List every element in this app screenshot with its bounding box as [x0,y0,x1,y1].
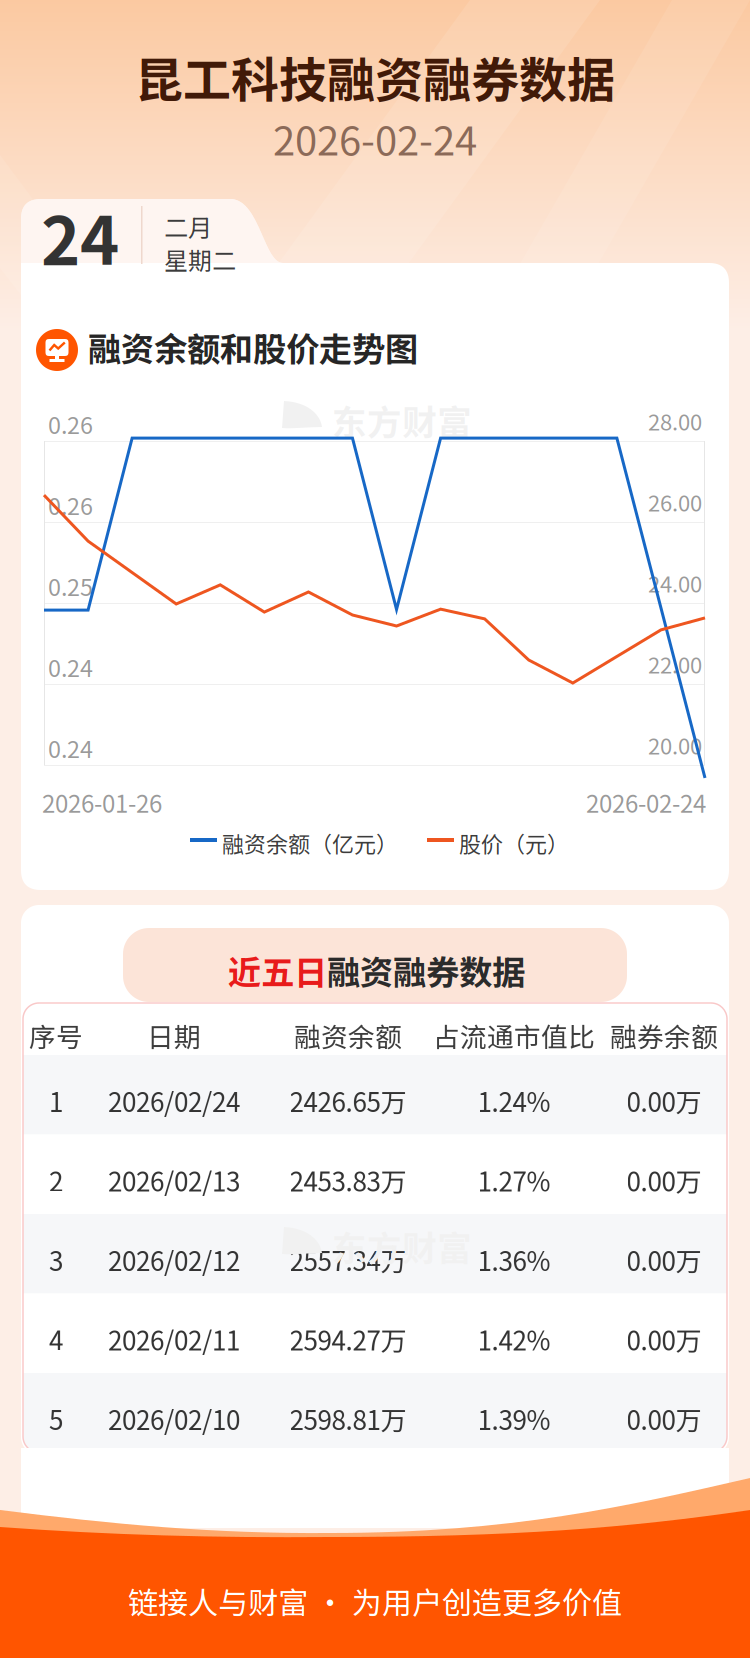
staticText: 2026/02/24 [108,1082,240,1119]
staticText: 2026-02-24 [586,785,706,820]
staticText: 东方财富 [332,395,472,445]
staticText: 2026/02/11 [108,1320,240,1358]
staticText: 0.00万 [626,1161,701,1199]
staticText: 2557.34万 [289,1241,406,1278]
staticText: 24 [41,188,119,284]
staticText: 2026-01-26 [42,785,162,820]
staticText: 融券余额 [610,1016,718,1055]
staticText: 1 [49,1082,63,1119]
staticText: 1.39% [477,1400,550,1437]
staticText: 序号 [29,1016,83,1055]
staticText: 2026/02/12 [108,1241,240,1278]
staticText: 0.26 [48,407,93,441]
staticText: 0.26 [48,488,93,522]
staticText: 2453.83万 [289,1161,406,1199]
staticText: 融资余额 [294,1016,402,1055]
staticText: 3 [49,1241,63,1278]
staticText: 融资余额（亿元） [222,827,398,859]
staticText: 东方财富 [332,1221,472,1271]
staticText: 2426.65万 [289,1082,406,1119]
staticText: 二月 [164,209,212,244]
staticText: 0.00万 [626,1082,701,1119]
staticText: 近五日 [228,946,327,994]
staticText: 0.00万 [626,1320,701,1358]
staticText: 2026/02/13 [108,1161,240,1199]
staticText: 占流通市值比 [433,1016,595,1055]
staticText: 1.24% [477,1082,550,1119]
staticText: 24.00 [648,567,702,599]
staticText: 1.27% [477,1161,550,1199]
staticText: 0.24 [48,650,93,684]
staticText: 融资余额和股价走势图 [88,323,418,371]
staticText: 融资融券数据 [327,946,525,994]
staticText: 2 [49,1161,63,1199]
staticText: 0.24 [48,731,93,765]
staticText: 星期二 [164,242,236,277]
staticText: 0.25 [48,569,93,603]
staticText: 4 [49,1320,63,1358]
staticText: 昆工科技融资融券数据 [135,42,615,111]
staticText: 0.00万 [626,1400,701,1437]
staticText: 股价（元） [459,827,569,859]
staticText: 2026/02/10 [108,1400,240,1437]
staticText: 2598.81万 [289,1400,406,1437]
staticText: 20.00 [648,729,702,761]
staticText: 日期 [147,1016,201,1055]
staticText: 2594.27万 [289,1320,406,1358]
staticText: 0.00万 [626,1241,701,1278]
staticText: 2026-02-24 [273,109,477,167]
staticText: 26.00 [648,486,702,518]
staticText: 链接人与财富 · 为用户创造更多价值 [128,1579,622,1623]
staticText: 22.00 [648,648,702,680]
staticText: 28.00 [648,405,702,437]
staticText: 1.42% [477,1320,550,1358]
staticText: 1.36% [477,1241,550,1278]
staticText: 5 [49,1400,63,1437]
